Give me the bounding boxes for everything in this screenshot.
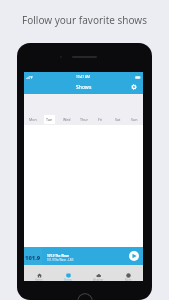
- button[interactable]: Settings: [129, 82, 139, 92]
- staticText: Shows: [64, 278, 72, 282]
- button[interactable]: Sun: [129, 115, 140, 124]
- staticText: Sun: [131, 117, 138, 122]
- staticText: Fri: [98, 117, 103, 122]
- staticText: Thur: [80, 117, 88, 122]
- button[interactable]: Mon: [27, 115, 38, 124]
- button[interactable]: Home: [24, 265, 53, 281]
- button[interactable]: More: [113, 265, 143, 281]
- staticText: 10:41 AM: [76, 75, 90, 79]
- button[interactable]: Tue: [44, 115, 55, 124]
- staticText: 101.9: [25, 254, 41, 262]
- button[interactable]: Weather: [83, 265, 113, 281]
- button[interactable]: Fri: [95, 115, 106, 124]
- staticText: Wed: [63, 117, 71, 122]
- staticText: Tue: [46, 117, 53, 122]
- button[interactable]: Shows: [53, 265, 83, 281]
- staticText: 101.9 The Wave: [47, 254, 70, 258]
- button[interactable]: 101.9: [24, 247, 143, 265]
- staticText: Mon: [29, 117, 37, 122]
- staticText: Home: [35, 278, 43, 282]
- button[interactable]: Wed: [61, 115, 72, 124]
- button[interactable]: Shows: [24, 80, 143, 94]
- staticText: Weather: [93, 278, 104, 282]
- button[interactable]: Sat: [112, 115, 123, 124]
- staticText: Shows: [76, 84, 92, 91]
- button[interactable]: Thur: [78, 115, 89, 124]
- staticText: More: [125, 278, 132, 282]
- staticText: 101.9 The Wave - LIVE: [47, 258, 74, 262]
- button[interactable]: Play: [129, 251, 139, 261]
- staticText: Sat: [115, 117, 121, 122]
- staticText: Follow your favorite shows: [0, 13, 169, 27]
